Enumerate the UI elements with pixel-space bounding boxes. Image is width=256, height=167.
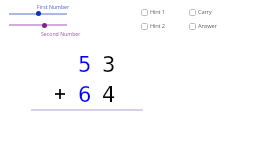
button[interactable]: Hint 1 xyxy=(141,8,165,16)
staticText: First Number xyxy=(37,3,70,10)
staticText: 3 xyxy=(102,53,116,77)
staticText: 5 xyxy=(78,53,92,77)
button[interactable]: Carry xyxy=(189,8,212,16)
staticText: Hint 2 xyxy=(150,22,165,30)
staticText: Carry xyxy=(198,8,212,16)
staticText: Second Number xyxy=(41,30,81,37)
staticText: 4 xyxy=(102,83,116,107)
button[interactable]: Hint 2 xyxy=(141,22,165,30)
staticText: Answer xyxy=(198,22,217,30)
staticText: 6 xyxy=(78,83,92,107)
button[interactable]: Second number slider xyxy=(42,23,47,28)
staticText: Hint 1 xyxy=(150,8,165,16)
button[interactable]: Answer xyxy=(189,22,217,30)
button[interactable]: First number slider xyxy=(36,11,41,16)
